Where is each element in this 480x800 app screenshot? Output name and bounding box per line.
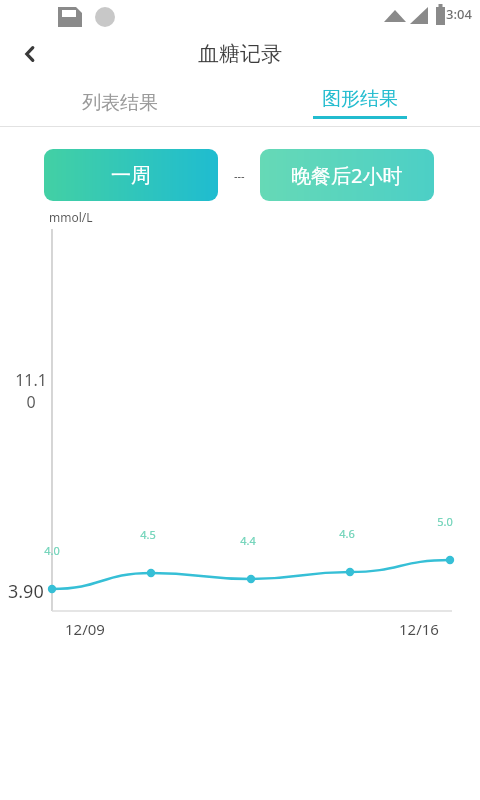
staticText: 列表结果 xyxy=(82,91,158,115)
staticText: --- xyxy=(234,168,245,183)
staticText: 晚餐后2小时 xyxy=(291,162,403,189)
staticText: 4.4 xyxy=(240,533,256,548)
staticText: 5.0 xyxy=(437,514,453,529)
button[interactable]: 列表结果 xyxy=(0,80,240,126)
staticText: 12/16 xyxy=(399,619,439,639)
staticText: 4.0 xyxy=(44,543,60,558)
staticText: mmol/L xyxy=(49,209,93,225)
button[interactable]: 一周 xyxy=(44,149,218,201)
staticText: 12/09 xyxy=(65,619,105,639)
staticText: 3:04 xyxy=(446,5,472,23)
staticText: 图形结果 xyxy=(322,87,398,111)
staticText: 一周 xyxy=(111,163,151,188)
staticText: 3.90 xyxy=(8,579,44,604)
staticText: 11.10 xyxy=(14,369,48,413)
staticText: 血糖记录 xyxy=(198,41,282,67)
staticText: 4.5 xyxy=(140,527,156,542)
button[interactable]: 图形结果 xyxy=(240,80,480,126)
button[interactable]: 晚餐后2小时 xyxy=(260,149,434,201)
button[interactable]: Back xyxy=(8,32,52,76)
staticText: 4.6 xyxy=(339,526,355,541)
